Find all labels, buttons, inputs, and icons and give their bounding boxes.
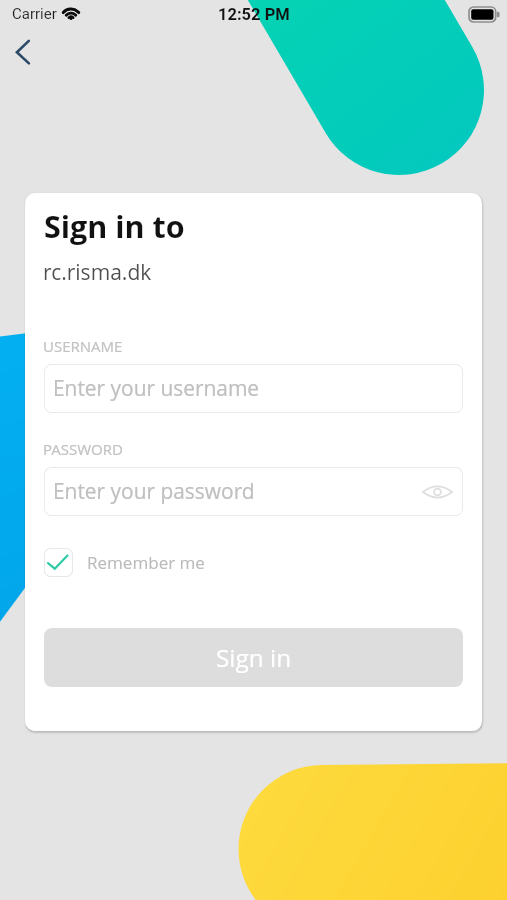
staticText: PASSWORD bbox=[43, 439, 123, 459]
staticText: Sign in to bbox=[44, 205, 185, 247]
staticText: rc.risma.dk bbox=[43, 258, 152, 287]
button[interactable]: Remember me bbox=[44, 545, 205, 579]
button[interactable]: Show password bbox=[418, 473, 456, 511]
button[interactable]: Back bbox=[0, 30, 46, 76]
button[interactable]: Enter your username bbox=[44, 364, 463, 413]
staticText: Sign in bbox=[216, 641, 292, 674]
staticText: 12:52 PM bbox=[218, 5, 290, 24]
staticText: Enter your username bbox=[53, 374, 260, 402]
staticText: Enter your password bbox=[53, 477, 255, 505]
button[interactable]: Enter your password bbox=[44, 467, 463, 516]
staticText: Carrier bbox=[12, 5, 57, 23]
staticText: Remember me bbox=[87, 551, 205, 574]
staticText: USERNAME bbox=[43, 336, 123, 356]
button[interactable]: Sign in bbox=[44, 628, 463, 687]
